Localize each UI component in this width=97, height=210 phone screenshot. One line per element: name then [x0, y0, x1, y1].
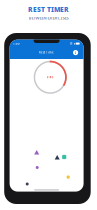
- staticText: Rest Time: [39, 51, 54, 54]
- staticText: 1:09: [13, 42, 20, 45]
- staticText: 0:45: [47, 75, 54, 79]
- button[interactable]: Info: [71, 48, 80, 57]
- staticText: ıll: [70, 42, 73, 45]
- staticText: ◗: [74, 42, 75, 45]
- staticText: i: [75, 50, 76, 55]
- staticText: BETWEEN EXERCISES: [28, 15, 68, 21]
- staticText: REST TIMER: [28, 5, 69, 14]
